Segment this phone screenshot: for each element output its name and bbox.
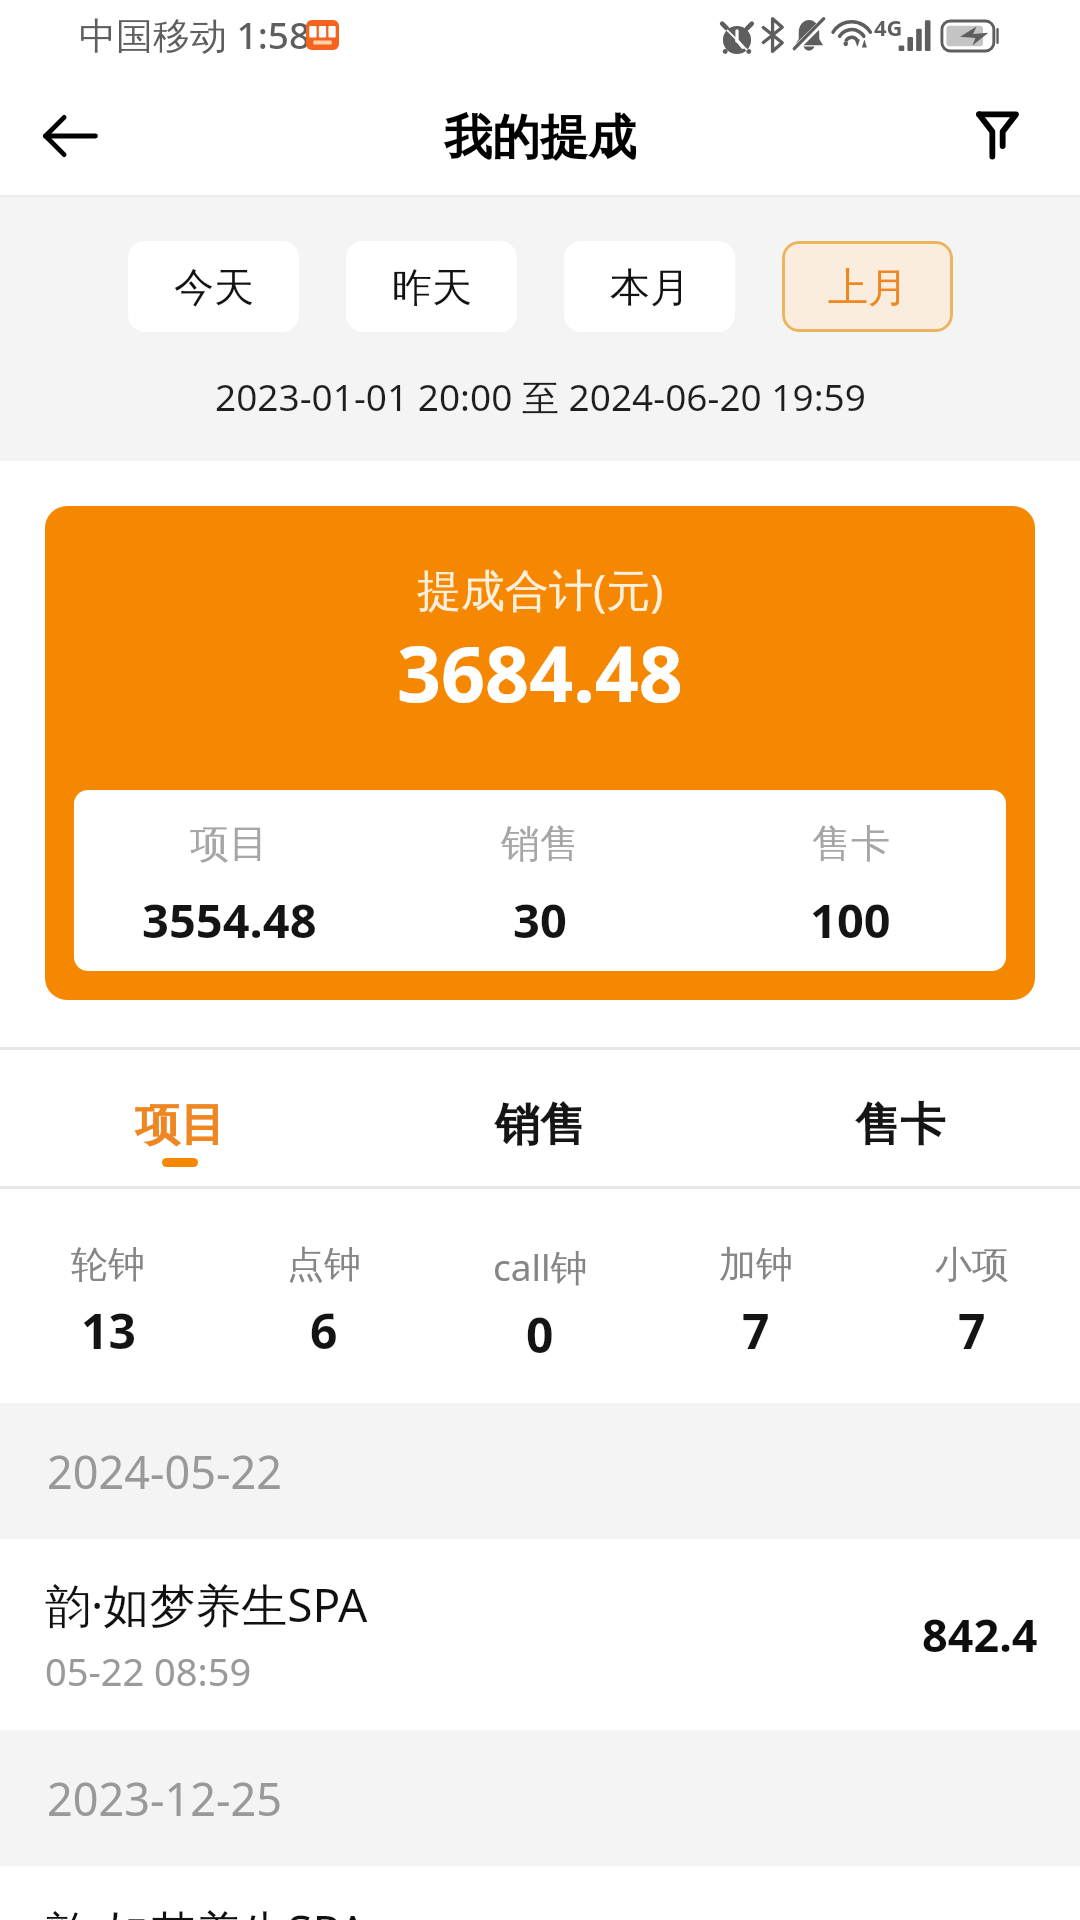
staticText: 30 bbox=[513, 888, 567, 952]
staticText: 小项 bbox=[935, 1241, 1009, 1288]
staticText: 3554.48 bbox=[142, 888, 317, 952]
staticText: 销售 bbox=[495, 1097, 585, 1154]
button[interactable]: 本月 bbox=[564, 241, 735, 332]
staticText: 6 bbox=[310, 1298, 338, 1363]
button[interactable]: 项目 bbox=[0, 1050, 360, 1186]
staticText: 售卡 bbox=[812, 819, 890, 868]
staticText: 13 bbox=[81, 1298, 136, 1363]
button[interactable]: Back bbox=[19, 86, 119, 186]
staticText: 加钟 bbox=[719, 1241, 793, 1288]
button[interactable]: 销售 bbox=[360, 1050, 720, 1186]
staticText: 4G bbox=[874, 12, 903, 42]
staticText: 项目 bbox=[135, 1097, 225, 1154]
staticText: 点钟 bbox=[287, 1241, 361, 1288]
staticText: 100 bbox=[810, 888, 891, 952]
staticText: call钟 bbox=[493, 1241, 588, 1292]
staticText: 05-22 08:59 bbox=[45, 1645, 252, 1697]
staticText: 提成合计(元) bbox=[417, 559, 664, 619]
staticText: 3684.48 bbox=[397, 620, 683, 725]
button[interactable]: 韵·如梦养生SPA bbox=[0, 1539, 1080, 1730]
staticText: 韵·如梦养生SPA bbox=[45, 1900, 368, 1920]
staticText: 2023-12-25 bbox=[47, 1768, 282, 1829]
staticText: 售卡 bbox=[855, 1097, 945, 1154]
button[interactable]: 上月 bbox=[782, 241, 953, 332]
staticText: 中国移动 1:58 bbox=[79, 9, 311, 60]
staticText: 韵·如梦养生SPA bbox=[45, 1573, 368, 1636]
button[interactable]: Filter bbox=[947, 85, 1047, 185]
staticText: 今天 bbox=[174, 262, 254, 312]
staticText: 项目 bbox=[190, 819, 268, 868]
staticText: 本月 bbox=[610, 262, 690, 312]
staticText: 我的提成 bbox=[444, 108, 636, 168]
button[interactable]: 韵·如梦养生SPA bbox=[0, 1866, 1080, 1920]
staticText: 7 bbox=[742, 1298, 770, 1363]
staticText: 轮钟 bbox=[71, 1241, 145, 1288]
staticText: 842.4 bbox=[922, 1604, 1038, 1665]
staticText: 上月 bbox=[828, 262, 908, 312]
staticText: 销售 bbox=[501, 819, 579, 868]
staticText: 0 bbox=[526, 1302, 554, 1367]
staticText: 2023-01-01 20:00 至 2024-06-20 19:59 bbox=[215, 371, 866, 422]
button[interactable]: 今天 bbox=[128, 241, 299, 332]
button[interactable]: 昨天 bbox=[346, 241, 517, 332]
staticText: 2024-05-22 bbox=[47, 1441, 282, 1502]
button[interactable]: 售卡 bbox=[720, 1050, 1080, 1186]
staticText: 昨天 bbox=[392, 262, 472, 312]
staticText: 7 bbox=[958, 1298, 986, 1363]
